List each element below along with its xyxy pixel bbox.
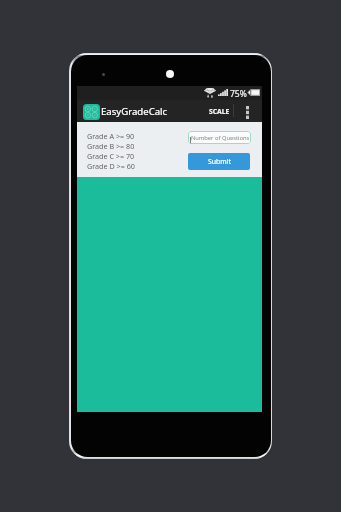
button[interactable]: Number of Questions xyxy=(188,131,251,144)
button[interactable]: Submit xyxy=(188,153,250,170)
staticText: Grade D >= 60 xyxy=(87,161,135,171)
staticText: Grade A >= 90 xyxy=(87,131,135,141)
button[interactable]: SCALE xyxy=(205,100,233,122)
button[interactable]: More options xyxy=(239,101,255,123)
staticText: Grade C >= 70 xyxy=(87,151,135,161)
staticText: SCALE xyxy=(209,107,230,116)
staticText: 75% xyxy=(230,88,247,100)
staticText: Grade B >= 80 xyxy=(87,141,135,151)
staticText: EasyGradeCalc xyxy=(101,105,168,118)
staticText: Submit xyxy=(208,157,231,166)
staticText: Number of Questions xyxy=(191,134,250,142)
